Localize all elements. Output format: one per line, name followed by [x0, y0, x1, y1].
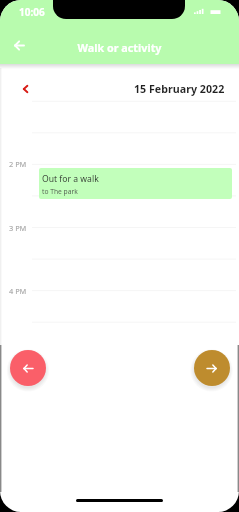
button[interactable]: Previous day	[15, 79, 35, 99]
staticText: to The park	[42, 187, 78, 196]
staticText: Out for a walk	[42, 173, 99, 185]
staticText: 10:06	[19, 5, 45, 19]
button[interactable]: Out for a walk	[39, 168, 232, 199]
button[interactable]: Previous	[10, 350, 46, 386]
staticText: 15 February 2022	[134, 82, 225, 97]
staticText: 4 PM	[9, 286, 27, 296]
staticText: 3 PM	[9, 223, 27, 233]
button[interactable]: Next	[194, 350, 230, 386]
staticText: 2 PM	[9, 159, 27, 169]
button[interactable]: Back	[7, 33, 31, 57]
staticText: Walk or activity	[0, 40, 239, 55]
